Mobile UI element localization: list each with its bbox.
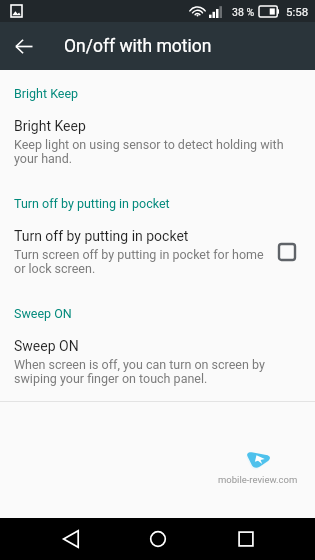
staticText: 38 % bbox=[232, 6, 255, 18]
staticText: Turn off by putting in pocket bbox=[14, 196, 170, 211]
button[interactable]: Home bbox=[137, 518, 179, 560]
button[interactable]: Bright Keep bbox=[0, 118, 315, 166]
staticText: Sweep ON bbox=[14, 306, 72, 321]
staticText: Turn off by putting in pocket bbox=[14, 228, 189, 244]
staticText: Sweep ON bbox=[14, 338, 79, 354]
staticText: Bright Keep bbox=[14, 118, 86, 134]
button[interactable]: Sweep ON bbox=[0, 338, 315, 386]
button[interactable]: Navigate up bbox=[0, 22, 48, 70]
staticText: mobile-review.com bbox=[218, 474, 298, 485]
button[interactable]: Recent apps bbox=[225, 518, 267, 560]
staticText: Keep light on using sensor to detect hol… bbox=[14, 137, 288, 166]
button[interactable]: Turn off by putting in pocket bbox=[0, 228, 315, 276]
staticText: Turn screen off by putting in pocket for… bbox=[14, 247, 269, 276]
staticText: On/off with motion bbox=[64, 36, 212, 57]
button[interactable]: Back bbox=[50, 518, 92, 560]
staticText: When screen is off, you can turn on scre… bbox=[14, 357, 288, 386]
staticText: Bright Keep bbox=[14, 86, 79, 101]
staticText: 5:58 bbox=[286, 5, 309, 18]
button[interactable]: Turn off by putting in pocket bbox=[279, 244, 295, 260]
